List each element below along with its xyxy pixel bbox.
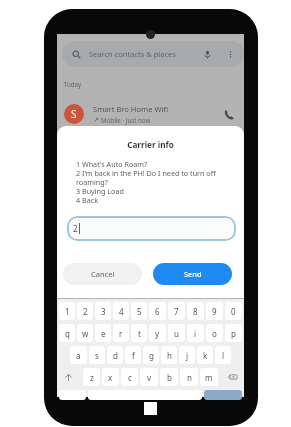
button[interactable]: i [187,324,204,342]
staticText: 7 [174,306,179,317]
button[interactable]: 7 [168,302,185,320]
staticText: k [203,350,208,361]
staticText: S [71,107,77,121]
button[interactable]: 2 [73,216,230,241]
staticText: l [222,350,225,361]
staticText: t [138,328,141,339]
other: Voice search [203,50,212,59]
button[interactable]: h [161,346,177,364]
staticText: m [205,372,213,383]
button[interactable]: g [143,346,159,364]
button[interactable]: w [77,324,93,342]
button[interactable]: d [107,346,123,364]
button[interactable]: 4 [113,302,129,320]
staticText: g [149,350,154,361]
button[interactable]: p [225,324,242,342]
staticText: u [174,328,179,339]
staticText: i [194,328,197,339]
other: Call [224,109,235,120]
button[interactable]: k [197,346,213,364]
other: More options [226,50,235,59]
button[interactable]: s [89,346,105,364]
button[interactable]: v [140,368,158,386]
staticText: 8 [193,306,198,317]
button[interactable]: Send [153,263,232,285]
staticText: j [186,350,189,361]
staticText: h [167,350,172,361]
button[interactable]: o [206,324,223,342]
button[interactable]: 8 [187,302,204,320]
staticText: d [113,350,118,361]
button[interactable]: q [59,324,75,342]
staticText: z [90,372,94,383]
button[interactable]: 3 [95,302,111,320]
button[interactable]: 1 [59,302,75,320]
button[interactable]: Symbols [59,390,86,400]
staticText: n [187,372,192,383]
button[interactable]: Space [88,390,202,400]
button[interactable]: a [70,346,87,364]
staticText: s [95,350,99,361]
staticText: r [119,328,123,339]
button[interactable]: 2 [77,302,93,320]
staticText: v [147,372,152,383]
button[interactable]: Cancel [63,263,142,285]
staticText: 0 [231,306,236,317]
staticText: Send [184,269,202,279]
staticText: 3 [101,306,106,317]
button[interactable]: Shift [59,368,77,386]
staticText: x [108,372,113,383]
button[interactable]: j [179,346,195,364]
button[interactable]: Search contacts & places [62,41,244,67]
staticText: 5 [137,306,142,317]
staticText: o [212,328,217,339]
button[interactable]: z [83,368,100,386]
button[interactable]: m [200,368,218,386]
staticText: 1 What's Auto Roam? 2 I'm back in the PH… [76,159,234,205]
button[interactable]: t [131,324,147,342]
button[interactable]: 5 [131,302,147,320]
staticText: 9 [212,306,217,317]
staticText: Smart Bro Home Wifi [93,104,169,114]
button[interactable]: n [180,368,198,386]
staticText: b [167,372,172,383]
staticText: w [82,328,89,339]
button[interactable]: f [125,346,141,364]
button[interactable]: b [160,368,178,386]
staticText: e [101,328,106,339]
button[interactable]: e [95,324,111,342]
staticText: Cancel [91,269,115,279]
staticText: 2 [73,223,78,234]
button[interactable]: c [121,368,138,386]
button[interactable]: y [149,324,166,342]
staticText: f [132,350,135,361]
button[interactable]: 6 [149,302,166,320]
staticText: p [231,328,236,339]
staticText: Carrier info [57,139,244,150]
staticText: 4 [119,306,124,317]
button[interactable]: x [102,368,119,386]
staticText: 6 [155,306,160,317]
button[interactable]: l [215,346,231,364]
button[interactable]: S [64,101,235,127]
staticText: y [155,328,160,339]
staticText: c [128,372,132,383]
staticText: Mobile · Just now [101,116,151,124]
button[interactable]: 9 [206,302,223,320]
staticText: a [76,350,81,361]
staticText: Today [64,80,82,88]
button[interactable]: Enter [204,390,242,400]
button[interactable]: 0 [225,302,242,320]
button[interactable]: Backspace [224,368,242,386]
staticText: Search contacts & places [89,49,176,59]
staticText: 1 [65,306,70,317]
staticText: 2 [83,306,88,317]
button[interactable]: r [113,324,129,342]
staticText: q [65,328,70,339]
button[interactable]: u [168,324,185,342]
